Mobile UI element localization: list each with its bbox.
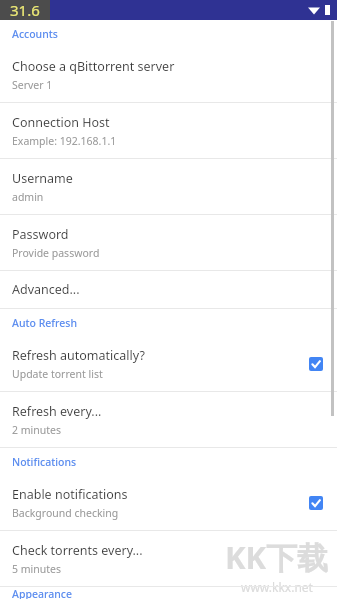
staticText: Enable notifications [12,486,128,503]
staticText: 31.6 [10,0,40,20]
button[interactable]: Password [0,215,337,270]
staticText: Check torrents every... [12,542,143,559]
button[interactable]: Toggle Refresh automatically? [309,357,323,371]
staticText: Advanced... [12,281,80,298]
staticText: Notifications [12,455,77,469]
button[interactable]: Connection Host [0,103,337,158]
staticText: Auto Refresh [12,316,77,330]
staticText: Background checking [12,506,119,520]
staticText: Password [12,226,69,243]
button[interactable]: Advanced... [0,271,337,308]
staticText: Refresh automatically? [12,347,145,364]
staticText: Server 1 [12,78,53,92]
button[interactable]: Username [0,159,337,214]
staticText: Refresh every... [12,403,102,420]
staticText: Provide password [12,246,100,260]
staticText: Username [12,170,73,187]
staticText: Accounts [12,27,58,41]
staticText: Example: 192.168.1.1 [12,134,117,148]
staticText: 2 minutes [12,423,61,437]
staticText: www.kkx.net [241,579,313,595]
staticText: Choose a qBittorrent server [12,58,175,75]
button[interactable]: Refresh automatically? [0,336,337,391]
staticText: Appearance [12,587,72,599]
staticText: Connection Host [12,114,110,131]
staticText: KK下载 [225,536,329,578]
staticText: Update torrent list [12,367,103,381]
staticText: 5 minutes [12,562,61,576]
button[interactable]: Refresh every... [0,392,337,447]
button[interactable]: Choose a qBittorrent server [0,47,337,102]
button[interactable]: Enable notifications [0,475,337,530]
button[interactable]: Toggle Enable notifications [309,496,323,510]
staticText: admin [12,190,44,204]
button[interactable]: Check torrents every... [0,531,337,586]
